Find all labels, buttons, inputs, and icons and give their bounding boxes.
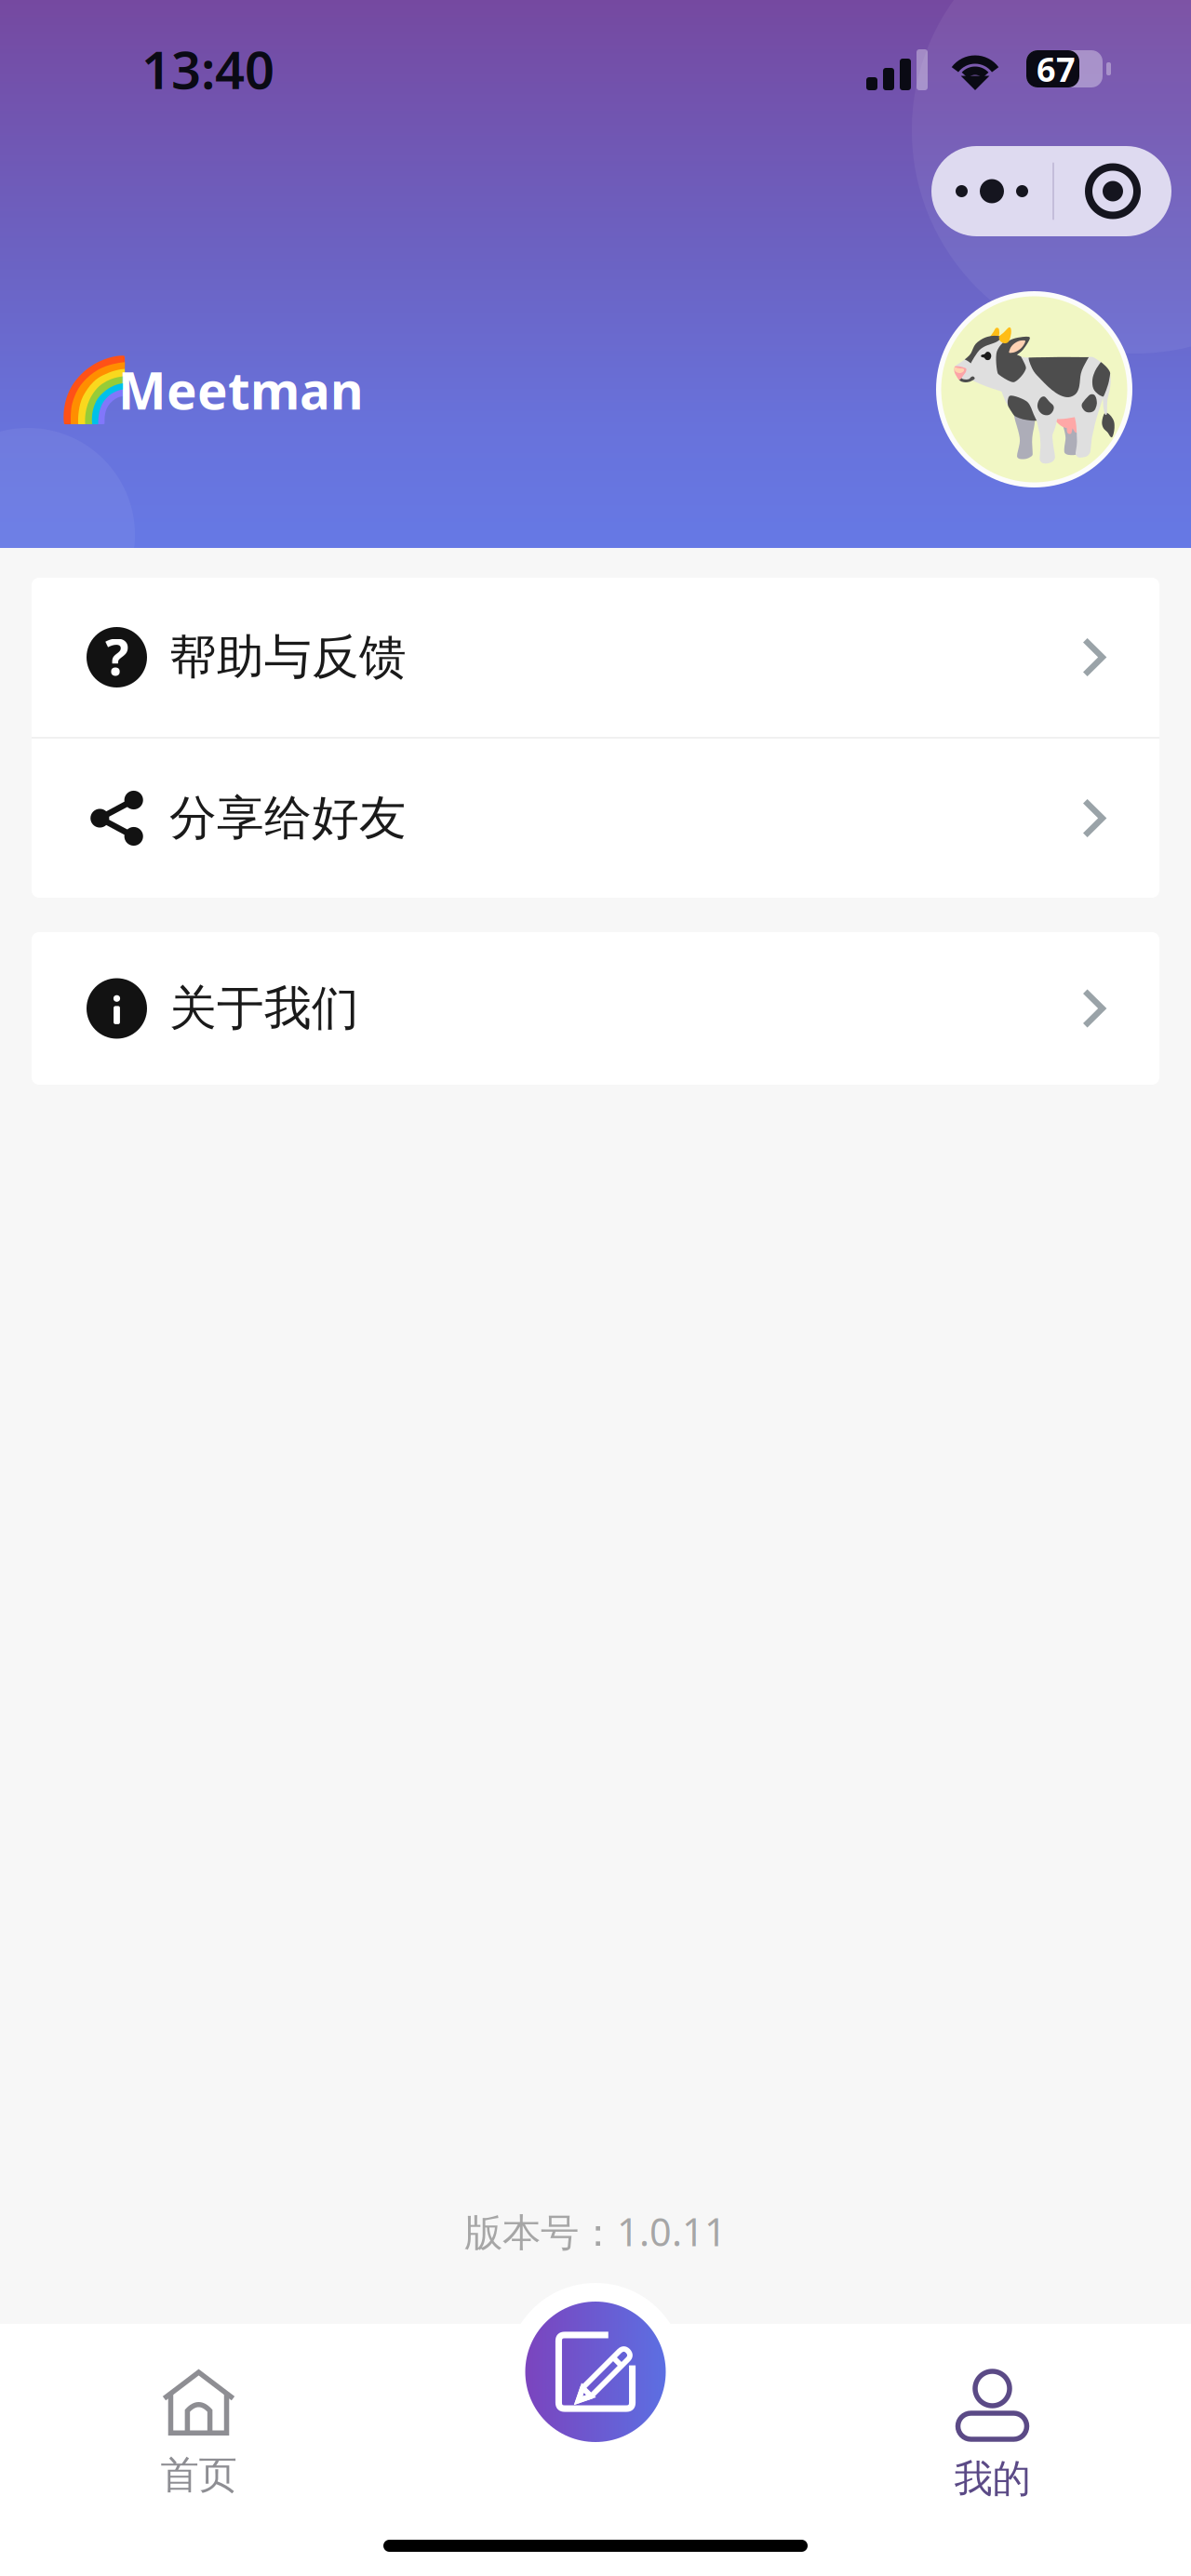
staticText: 🌈 <box>56 354 133 425</box>
button[interactable]: Compose <box>507 2283 684 2461</box>
button[interactable]: 我的 <box>794 2324 1191 2576</box>
staticText: 🐄 <box>943 306 1125 473</box>
staticText: 帮助与反馈 <box>169 628 407 686</box>
staticText: 分享给好友 <box>169 789 407 847</box>
staticText: 我的 <box>954 2455 1030 2502</box>
button[interactable]: 关于我们 <box>32 932 1159 1085</box>
button[interactable]: Avatar <box>936 291 1132 487</box>
button[interactable]: 分享给好友 <box>32 739 1159 898</box>
button[interactable]: 首页 <box>0 2324 397 2576</box>
staticText: ? <box>105 623 128 689</box>
staticText: Meetman <box>118 356 364 424</box>
staticText: 13:40 <box>141 34 274 103</box>
button[interactable]: ? <box>32 578 1159 737</box>
staticText: 首页 <box>161 2451 237 2499</box>
staticText: 关于我们 <box>169 980 359 1037</box>
staticText: 版本号：1.0.11 <box>464 2206 727 2257</box>
button[interactable]: Mini program menu <box>931 146 1171 236</box>
staticText: 67 <box>1037 47 1076 91</box>
